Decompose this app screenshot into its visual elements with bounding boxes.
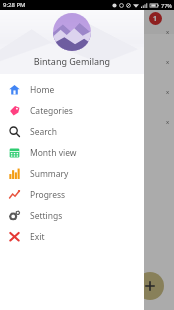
staticText: Tekan tombol + untuk membuat xyxy=(6,89,142,101)
staticText: Month view xyxy=(30,147,77,159)
button[interactable]: Notifications xyxy=(149,12,162,25)
button[interactable]: Profile photo xyxy=(53,13,91,51)
staticText: x xyxy=(166,28,170,36)
button[interactable]: Month view xyxy=(0,142,144,163)
staticText: x xyxy=(166,88,170,96)
staticText: Progress xyxy=(30,189,66,201)
staticText: Bintang Gemilang xyxy=(0,55,144,67)
staticText: Home xyxy=(30,84,55,96)
button[interactable]: Add note xyxy=(136,272,164,300)
staticText: Search xyxy=(30,126,57,138)
staticText: 1 xyxy=(153,14,158,24)
button[interactable]: Search xyxy=(0,121,144,142)
button[interactable]: Home xyxy=(0,79,144,100)
button[interactable]: Categories xyxy=(0,100,144,121)
staticText: catatan baru xyxy=(6,113,64,125)
staticText: Settings xyxy=(30,210,63,222)
staticText: x xyxy=(166,58,170,66)
button[interactable]: Settings xyxy=(0,205,144,226)
staticText: Categories xyxy=(30,105,73,117)
staticText: Belum ada catatan yang dibuat xyxy=(6,65,138,77)
staticText: x xyxy=(166,118,170,126)
staticText: Exit xyxy=(30,231,45,243)
button[interactable]: Profile photo xyxy=(0,10,144,74)
staticText: 77% xyxy=(161,2,172,9)
button[interactable]: Progress xyxy=(0,184,144,205)
staticText: Summary xyxy=(30,168,69,180)
staticText: 9:28 PM xyxy=(3,1,26,9)
button[interactable]: Exit xyxy=(0,226,144,247)
button[interactable]: Summary xyxy=(0,163,144,184)
